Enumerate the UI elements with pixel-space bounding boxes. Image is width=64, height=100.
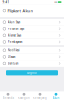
button[interactable]: Pembayaran [0, 39, 64, 45]
button[interactable]: Notifikasi [0, 47, 64, 54]
staticText: Bantuan [8, 62, 19, 65]
button[interactable]: Bantuan [0, 60, 64, 67]
staticText: Akun [52, 96, 59, 100]
staticText: Logout [27, 71, 37, 74]
staticText: Akun Saya [8, 20, 20, 24]
button[interactable]: Pesanan Saya [0, 26, 64, 32]
button[interactable]: Logout [6, 70, 58, 75]
staticText: Keranjang [33, 96, 47, 100]
staticText: Beranda [2, 96, 13, 100]
staticText: Pembayaran [8, 40, 23, 44]
staticText: ▮▮▮ [54, 1, 57, 3]
button[interactable]: Kategori [16, 93, 32, 100]
button[interactable]: Keranjang [32, 93, 48, 100]
staticText: Flipkart Akun [7, 8, 33, 13]
button[interactable]: Alamat Saya [0, 32, 64, 39]
staticText: Ulasan [8, 55, 16, 59]
staticText: Pesanan Saya [8, 27, 24, 30]
button[interactable]: Akun [48, 93, 64, 100]
button[interactable]: Ulasan [0, 54, 64, 60]
staticText: 9:41 [3, 0, 10, 4]
button[interactable]: Beranda [0, 93, 16, 100]
staticText: Alamat Saya [8, 34, 21, 37]
staticText: Kategori [18, 96, 30, 100]
staticText: Notifikasi [8, 48, 20, 52]
button[interactable]: Akun Saya [0, 19, 64, 26]
